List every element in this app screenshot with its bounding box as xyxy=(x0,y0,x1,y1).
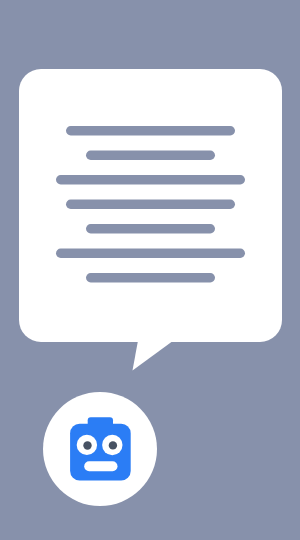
button[interactable]: Assistant avatar xyxy=(43,392,157,506)
button[interactable]: Assistant message xyxy=(19,69,282,342)
